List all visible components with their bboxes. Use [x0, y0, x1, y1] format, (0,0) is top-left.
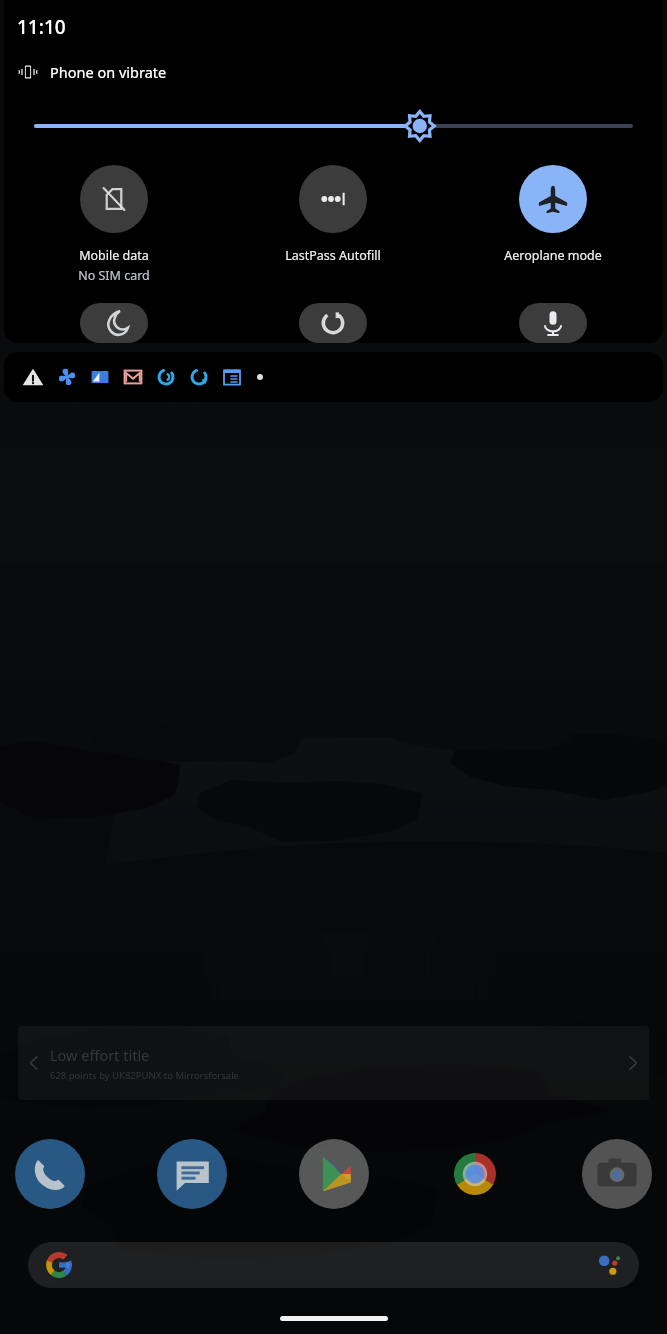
button[interactable]: Brightness [36, 109, 631, 143]
button[interactable]: Aeroplane mode [443, 165, 663, 264]
button[interactable]: Next [617, 1026, 649, 1100]
staticText: Phone on vibrate [50, 62, 167, 82]
button[interactable]: App [156, 1138, 228, 1210]
button[interactable] [4, 352, 663, 402]
staticText: Aeroplane mode [504, 247, 602, 264]
button[interactable]: Mobile data [4, 165, 223, 284]
button[interactable]: App [581, 1138, 653, 1210]
button[interactable]: Record [443, 303, 663, 343]
button[interactable]: LastPass Autofill [223, 165, 443, 264]
button[interactable]: App [14, 1138, 86, 1210]
staticText: LastPass Autofill [285, 247, 381, 264]
staticText: 11:10 [17, 14, 66, 40]
staticText: Mobile data [79, 247, 149, 264]
button[interactable]: App [298, 1138, 370, 1210]
staticText: Low effort title [50, 1045, 150, 1065]
button[interactable]: Data Saver [223, 303, 443, 343]
button[interactable]: Google search [28, 1242, 639, 1288]
staticText: No SIM card [78, 267, 150, 284]
button[interactable]: Previous [18, 1026, 649, 1100]
button[interactable]: App [439, 1138, 511, 1210]
button[interactable]: Previous [18, 1026, 50, 1100]
staticText: 628 points by UK82PUNX to Mirrorsforsale [50, 1069, 239, 1082]
button[interactable]: Phone on vibrate [17, 61, 167, 83]
button[interactable]: Night Light [4, 303, 223, 343]
